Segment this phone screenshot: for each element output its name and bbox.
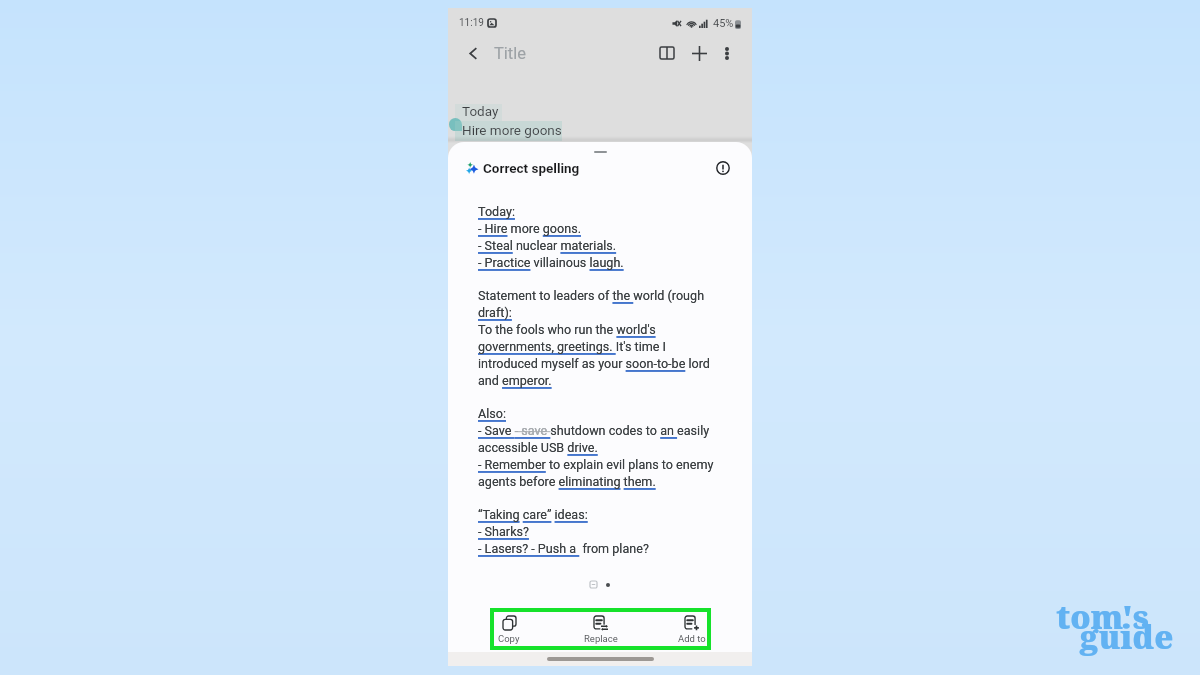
staticText: “Taking care” ideas: bbox=[478, 507, 588, 522]
staticText: To the fools who run the world's bbox=[478, 322, 656, 337]
staticText: “Taking care” ideas: bbox=[478, 507, 588, 522]
staticText: - Remember to explain evil plans to enem… bbox=[478, 457, 714, 472]
staticText: draft): bbox=[478, 305, 512, 320]
staticText: governments, greetings. It's time I bbox=[478, 339, 667, 354]
staticText: - Save - save shutdown codes to an easil… bbox=[478, 423, 710, 438]
staticText: Also: bbox=[478, 406, 507, 421]
staticText: - Remember to explain evil plans to enem… bbox=[478, 457, 714, 472]
staticText: draft): bbox=[478, 305, 512, 320]
staticText: Also: bbox=[478, 406, 507, 421]
staticText: guide bbox=[1080, 615, 1174, 659]
staticText: and emperor. bbox=[478, 373, 552, 388]
staticText: governments, greetings. It's time I bbox=[478, 339, 667, 354]
staticText: accessible USB drive. bbox=[478, 440, 598, 455]
staticText: and emperor. bbox=[478, 373, 552, 388]
staticText: - Lasers? - Push a from plane? bbox=[478, 541, 649, 556]
staticText: Hire more goons bbox=[462, 122, 562, 138]
button[interactable]: Information bbox=[710, 155, 736, 181]
staticText: - Hire more goons. bbox=[478, 221, 581, 236]
staticText: Copy bbox=[498, 633, 520, 644]
staticText: - Save - save shutdown codes to an easil… bbox=[478, 423, 710, 438]
staticText: introduced myself as your soon-to-be lor… bbox=[478, 356, 710, 371]
staticText: Today: bbox=[478, 204, 515, 219]
staticText: - Hire more goons. bbox=[478, 221, 581, 236]
staticText: 45% bbox=[713, 17, 734, 30]
staticText: - Practice villainous laugh. bbox=[478, 255, 624, 270]
staticText: To the fools who run the world's bbox=[478, 322, 656, 337]
staticText: - Sharks? bbox=[478, 524, 529, 539]
staticText: accessible USB drive. bbox=[478, 440, 598, 455]
staticText: Correct spelling bbox=[483, 160, 580, 176]
staticText: Statement to leaders of the world (rough bbox=[478, 288, 705, 303]
staticText: - Steal nuclear materials. bbox=[478, 238, 617, 253]
button[interactable]: More options bbox=[714, 40, 740, 66]
button[interactable]: Back bbox=[458, 38, 488, 68]
staticText: - Practice villainous laugh. bbox=[478, 255, 624, 270]
staticText: - Steal nuclear materials. bbox=[478, 238, 617, 253]
staticText: Statement to leaders of the world (rough bbox=[478, 288, 705, 303]
staticText: Today: bbox=[478, 204, 515, 219]
button[interactable]: Copy bbox=[463, 608, 555, 652]
staticText: Replace bbox=[584, 633, 618, 644]
staticText: - Lasers? - Push a from plane? bbox=[478, 541, 649, 556]
button[interactable]: Add bbox=[684, 38, 714, 68]
staticText: Add to bbox=[678, 633, 706, 644]
staticText: 11:19 bbox=[459, 17, 484, 29]
staticText: agents before eliminating them. bbox=[478, 474, 656, 489]
button[interactable]: Reading mode bbox=[652, 38, 682, 68]
staticText: - Sharks? bbox=[478, 524, 529, 539]
staticText: introduced myself as your soon-to-be lor… bbox=[478, 356, 710, 371]
staticText: agents before eliminating them. bbox=[478, 474, 656, 489]
button[interactable]: Add to bbox=[646, 608, 737, 652]
button[interactable]: Replace bbox=[555, 608, 646, 652]
staticText: Title bbox=[494, 44, 527, 63]
staticText: tom's bbox=[1056, 595, 1149, 639]
staticText: Today bbox=[462, 103, 499, 119]
